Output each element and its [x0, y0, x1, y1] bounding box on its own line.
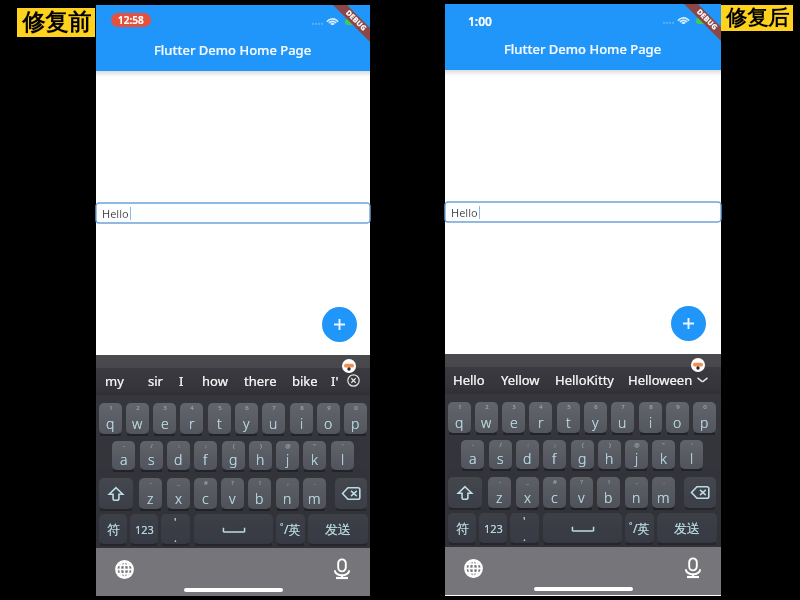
button[interactable]: my [74, 369, 154, 393]
button[interactable]: 6 [584, 402, 607, 433]
button[interactable]: Change language [464, 559, 483, 578]
staticText: w [481, 413, 492, 432]
button[interactable]: 8 [639, 402, 662, 433]
button[interactable]: . [303, 478, 326, 509]
button[interactable]: 6 [235, 403, 258, 434]
button[interactable]: space [194, 514, 273, 544]
button[interactable]: 123 [479, 513, 507, 543]
button[interactable]: 4 [529, 402, 552, 433]
button[interactable]: 2 [126, 403, 149, 434]
button[interactable]: 3 [502, 402, 525, 433]
button[interactable]: @ [625, 440, 648, 469]
button[interactable]: 发送 [308, 514, 368, 544]
staticText: ! [608, 478, 610, 486]
staticText: 8 [300, 404, 304, 412]
button[interactable]: _ [516, 477, 539, 508]
button[interactable]: 0 [693, 402, 716, 433]
button[interactable]: / [489, 440, 512, 469]
button[interactable]: Add [322, 307, 357, 342]
button[interactable]: 英 [625, 513, 654, 543]
button[interactable]: 123 [130, 514, 158, 544]
button[interactable]: ; [543, 440, 566, 469]
button[interactable]: ) [598, 440, 621, 469]
button[interactable]: / [140, 441, 163, 470]
button[interactable]: - [488, 477, 511, 508]
button[interactable]: how [175, 369, 255, 393]
button[interactable]: ( [222, 441, 245, 470]
button[interactable]: backspace [335, 478, 367, 509]
button[interactable]: 8 [290, 403, 313, 434]
button[interactable]: ; [194, 441, 217, 470]
button[interactable]: bike [265, 369, 345, 393]
button[interactable]: Hello [96, 203, 370, 223]
button[interactable]: " [303, 441, 326, 470]
button[interactable]: Change language [115, 560, 134, 579]
button[interactable]: ? [570, 477, 593, 508]
button[interactable]: shift [448, 477, 482, 508]
button[interactable]: Sogou [342, 359, 356, 373]
button[interactable]: Voice input [332, 559, 352, 579]
button[interactable]: ) [249, 441, 272, 470]
button[interactable]: ' [680, 440, 703, 469]
button[interactable]: I [141, 369, 221, 393]
button[interactable]: ( [571, 440, 594, 469]
button[interactable]: 3 [153, 403, 176, 434]
button[interactable]: : [516, 440, 539, 469]
button[interactable]: shift [99, 478, 133, 509]
button[interactable]: space [543, 513, 622, 543]
button[interactable]: @ [276, 441, 299, 470]
button[interactable]: , [276, 478, 299, 509]
button[interactable]: I' [295, 369, 375, 393]
button[interactable]: 4 [180, 403, 203, 434]
staticText: 3 [163, 404, 167, 412]
button[interactable]: Helloween [620, 368, 700, 392]
button[interactable]: Sogou [691, 358, 705, 372]
button[interactable]: ! [248, 478, 271, 509]
staticText: @ [285, 442, 291, 450]
button[interactable]: there [220, 369, 300, 393]
button[interactable]: HelloKitty [544, 368, 624, 392]
button[interactable]: ! [597, 477, 620, 508]
button[interactable]: backspace [684, 477, 716, 508]
button[interactable]: - [139, 478, 162, 509]
button[interactable]: Hello [429, 368, 509, 392]
button[interactable]: ' [331, 441, 354, 470]
button[interactable]: - [112, 441, 135, 470]
button[interactable]: 5 [557, 402, 580, 433]
button[interactable]: Add [671, 306, 706, 341]
button[interactable]: 英 [276, 514, 305, 544]
button[interactable]: " [652, 440, 675, 469]
button[interactable]: # [194, 478, 217, 509]
button[interactable]: 0 [344, 403, 367, 434]
button[interactable]: Clear [341, 368, 365, 392]
button[interactable]: Hello [445, 202, 721, 222]
button[interactable]: punct [161, 514, 190, 544]
staticText: 修复后 [726, 5, 789, 31]
button[interactable]: 2 [475, 402, 498, 433]
button[interactable]: 符 [448, 513, 476, 543]
button[interactable]: Yellow [480, 368, 560, 392]
staticText: c [551, 488, 558, 507]
button[interactable]: Expand [690, 367, 714, 391]
button[interactable]: # [543, 477, 566, 508]
button[interactable]: 7 [262, 403, 285, 434]
button[interactable]: ? [221, 478, 244, 509]
button[interactable]: 9 [666, 402, 689, 433]
button[interactable]: _ [167, 478, 190, 509]
button[interactable]: 发送 [657, 513, 717, 543]
button[interactable]: 5 [208, 403, 231, 434]
button[interactable]: - [461, 440, 484, 469]
staticText: ( [233, 442, 235, 450]
staticText: Hello [102, 206, 129, 221]
button[interactable]: . [652, 477, 675, 508]
button[interactable]: 9 [317, 403, 340, 434]
button[interactable]: 1 [99, 403, 122, 434]
button[interactable]: sir [115, 369, 195, 393]
button[interactable]: , [625, 477, 648, 508]
button[interactable]: 1 [448, 402, 471, 433]
button[interactable]: : [167, 441, 190, 470]
button[interactable]: 符 [99, 514, 127, 544]
button[interactable]: 7 [611, 402, 634, 433]
button[interactable]: punct [510, 513, 539, 543]
button[interactable]: Voice input [683, 558, 703, 578]
